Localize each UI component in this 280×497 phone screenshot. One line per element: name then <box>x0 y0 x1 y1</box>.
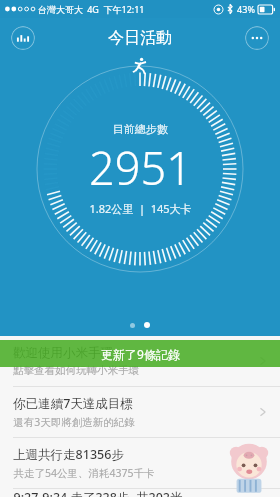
button[interactable]: 你已連續7天達成目標 <box>0 387 280 437</box>
staticText: 今日活動 <box>108 28 172 48</box>
staticText: 你已連續7天達成目標 <box>13 395 133 412</box>
staticText: 2951 <box>89 137 192 198</box>
staticText: 歡迎使用小米手環 <box>13 345 113 361</box>
staticText: 目前總步數 <box>113 122 168 136</box>
staticText: 點擊查看如何玩轉小米手環 <box>13 364 139 377</box>
staticText: 下午12:11 <box>103 3 145 15</box>
button[interactable]: Statistics <box>11 26 35 50</box>
button[interactable]: 上週共行走81356步 <box>0 438 280 488</box>
staticText: 9:27-9:34 走了328步, 共202米 <box>13 489 183 497</box>
button[interactable]: 歡迎使用小米手環 <box>0 336 280 386</box>
staticText: 還有3天即將創造新的紀錄 <box>13 415 135 429</box>
button[interactable]: More options <box>245 26 269 50</box>
button[interactable]: 9:27-9:34 走了328步, 共202米 <box>0 489 280 497</box>
staticText: 台灣大哥大 <box>38 4 83 15</box>
staticText: 共走了54公里、消耗4375千卡 <box>13 466 155 480</box>
staticText: 上週共行走81356步 <box>13 446 124 463</box>
staticText: 43% <box>237 3 255 15</box>
staticText: 4G <box>87 3 99 15</box>
staticText: 1.82公里 | 145大卡 <box>89 201 192 216</box>
staticText: 更新了9條記錄 <box>101 346 180 362</box>
